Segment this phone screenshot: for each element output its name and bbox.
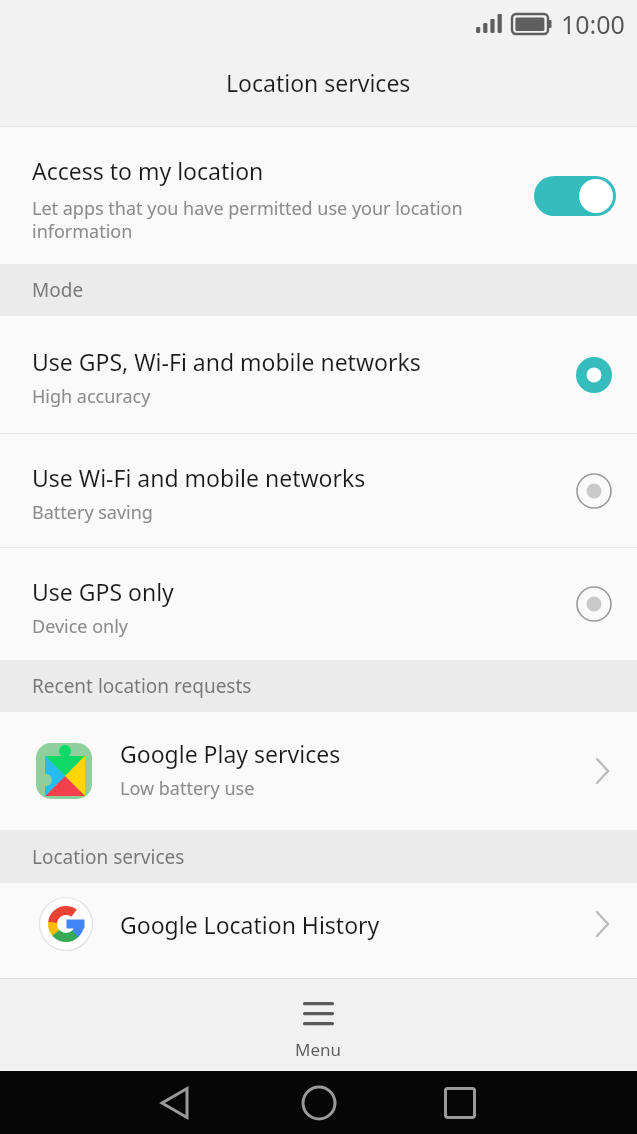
button[interactable]: Google Play services	[0, 712, 637, 830]
staticText: Mode	[32, 277, 84, 303]
button[interactable]	[432, 1075, 488, 1131]
button[interactable]	[147, 1075, 203, 1131]
staticText: Let apps that you have permitted use you…	[32, 196, 463, 243]
staticText: High accuracy	[32, 384, 151, 409]
staticText: Access to my location	[32, 155, 264, 186]
staticText: Use Wi-Fi and mobile networks	[32, 462, 366, 493]
button[interactable]: Menu	[295, 1000, 342, 1061]
staticText: Use GPS only	[32, 576, 174, 607]
staticText: Google Location History	[120, 909, 380, 940]
button[interactable]: Use GPS only	[0, 548, 637, 660]
button[interactable]	[291, 1075, 347, 1131]
staticText: 10:00	[561, 7, 625, 41]
staticText: Google Play services	[120, 738, 341, 769]
button[interactable]: Google Location History	[0, 883, 637, 965]
staticText: Use GPS, Wi-Fi and mobile networks	[32, 346, 421, 377]
staticText: Low battery use	[120, 776, 255, 801]
button[interactable]	[534, 176, 616, 216]
button[interactable]: Use GPS, Wi-Fi and mobile networks	[0, 316, 637, 433]
staticText: Recent location requests	[32, 673, 252, 699]
staticText: Location services	[32, 844, 185, 870]
staticText: Location services	[226, 67, 411, 98]
button[interactable]: Access to my location	[0, 127, 637, 264]
button[interactable]: Use Wi-Fi and mobile networks	[0, 434, 637, 547]
staticText: Battery saving	[32, 500, 153, 525]
staticText: Device only	[32, 614, 129, 639]
staticText: Menu	[295, 1038, 342, 1061]
